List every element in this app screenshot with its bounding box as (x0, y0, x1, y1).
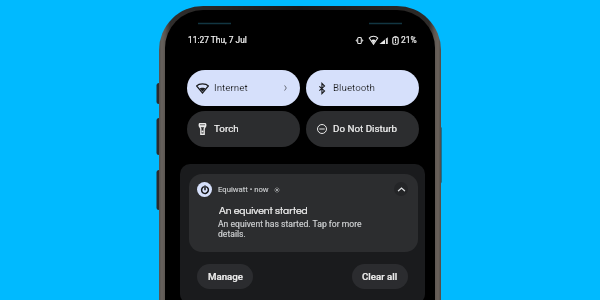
staticText: An equivent started (219, 206, 308, 217)
staticText: Clear all (362, 271, 398, 282)
button[interactable]: Equiwatt • now (189, 174, 418, 252)
button[interactable]: Collapse notification (394, 182, 408, 196)
staticText: Manage (208, 271, 243, 282)
staticText: 21% (401, 35, 417, 45)
staticText: Equiwatt • now (218, 185, 269, 194)
button[interactable]: Torch (187, 111, 300, 147)
staticText: Torch (214, 123, 239, 134)
button[interactable]: Manage (197, 264, 253, 289)
button[interactable]: Clear all (352, 264, 408, 289)
staticText: Internet (214, 82, 248, 93)
staticText: An equivent has started. Tap for more de… (218, 219, 368, 239)
staticText: 11:27 Thu, 7 Jul (188, 35, 247, 45)
staticText: Bluetooth (333, 82, 375, 93)
staticText: Do Not Disturb (333, 123, 397, 134)
button[interactable]: Bluetooth (306, 70, 419, 106)
button[interactable]: Internet (187, 70, 300, 106)
button[interactable]: Do Not Disturb (306, 111, 419, 147)
